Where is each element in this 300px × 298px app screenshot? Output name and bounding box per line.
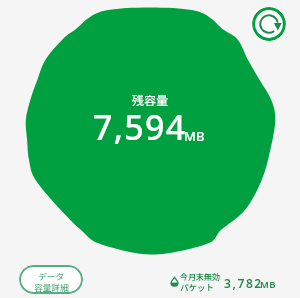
button[interactable]: Refresh: [252, 7, 286, 41]
staticText: パケット: [180, 281, 215, 293]
staticText: 7,594: [93, 104, 187, 150]
staticText: 残容量: [132, 91, 169, 108]
staticText: 今月末無効: [180, 271, 220, 283]
staticText: データ: [38, 270, 65, 283]
staticText: MB: [184, 127, 205, 145]
staticText: 容量詳細: [34, 281, 69, 294]
staticText: 3,782: [224, 275, 263, 291]
button[interactable]: データ: [19, 265, 83, 294]
staticText: MB: [260, 278, 276, 291]
